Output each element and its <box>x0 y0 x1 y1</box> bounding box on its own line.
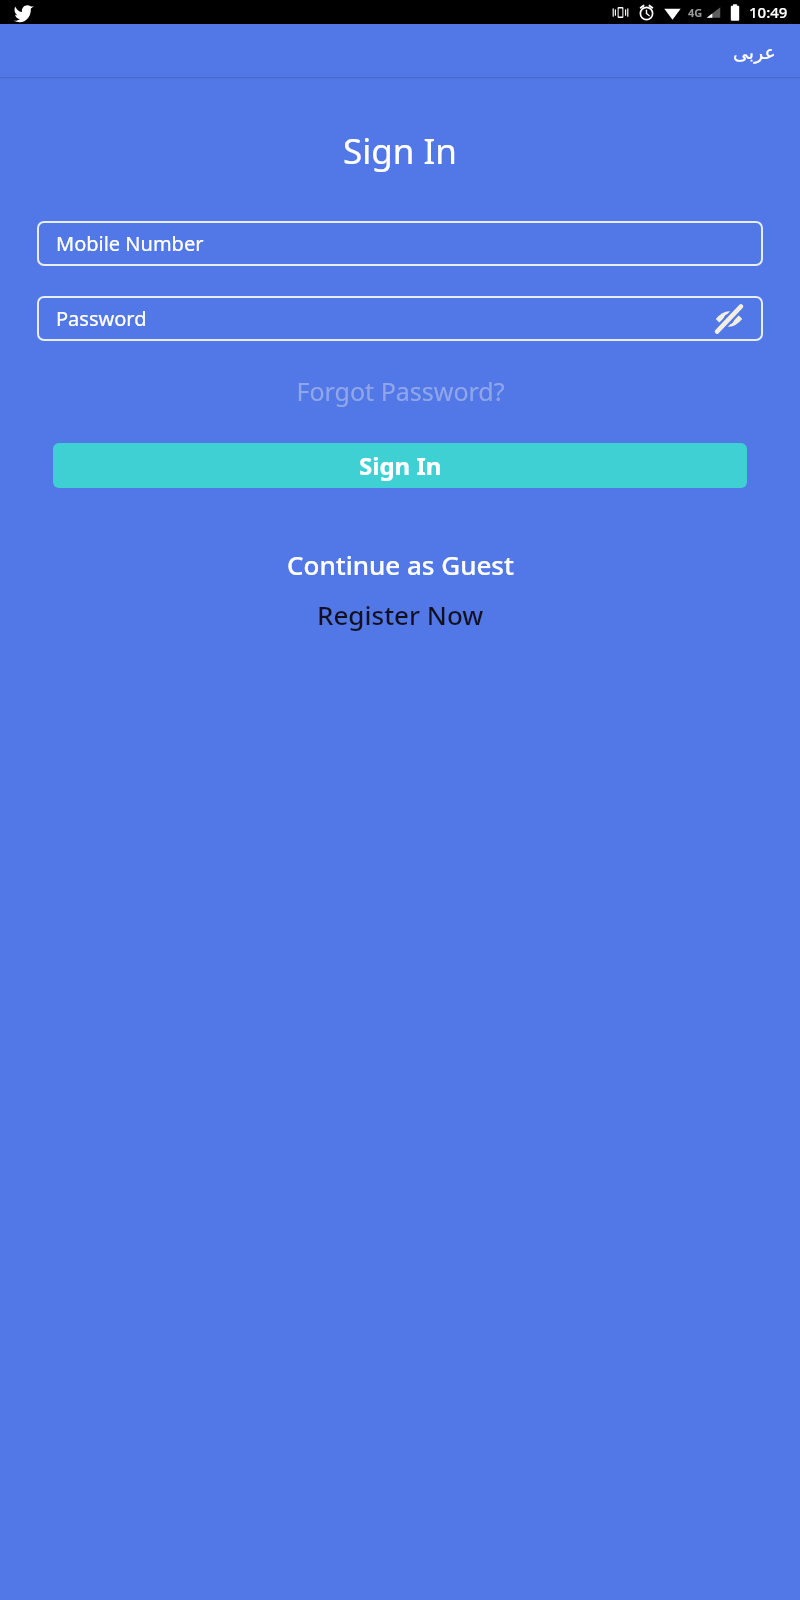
staticText: عربى <box>733 41 776 63</box>
button[interactable]: Mobile Number <box>37 221 763 266</box>
staticText: 10:49 <box>749 2 788 22</box>
staticText: Password <box>56 305 147 332</box>
staticText: Forgot Password? <box>296 374 505 408</box>
staticText: Register Now <box>317 597 484 632</box>
button[interactable]: Register Now <box>0 591 800 637</box>
button[interactable]: Show password <box>712 302 746 336</box>
button[interactable]: Continue as Guest <box>0 541 800 587</box>
staticText: 4G <box>688 5 703 20</box>
staticText: Sign In <box>359 449 442 482</box>
staticText: Mobile Number <box>56 230 204 257</box>
button[interactable]: عربى <box>725 35 784 69</box>
button[interactable]: Sign In <box>53 443 747 488</box>
button[interactable]: Forgot Password? <box>0 367 800 415</box>
button[interactable]: Password <box>37 296 763 341</box>
staticText: Continue as Guest <box>287 547 514 582</box>
staticText: Sign In <box>0 127 800 175</box>
